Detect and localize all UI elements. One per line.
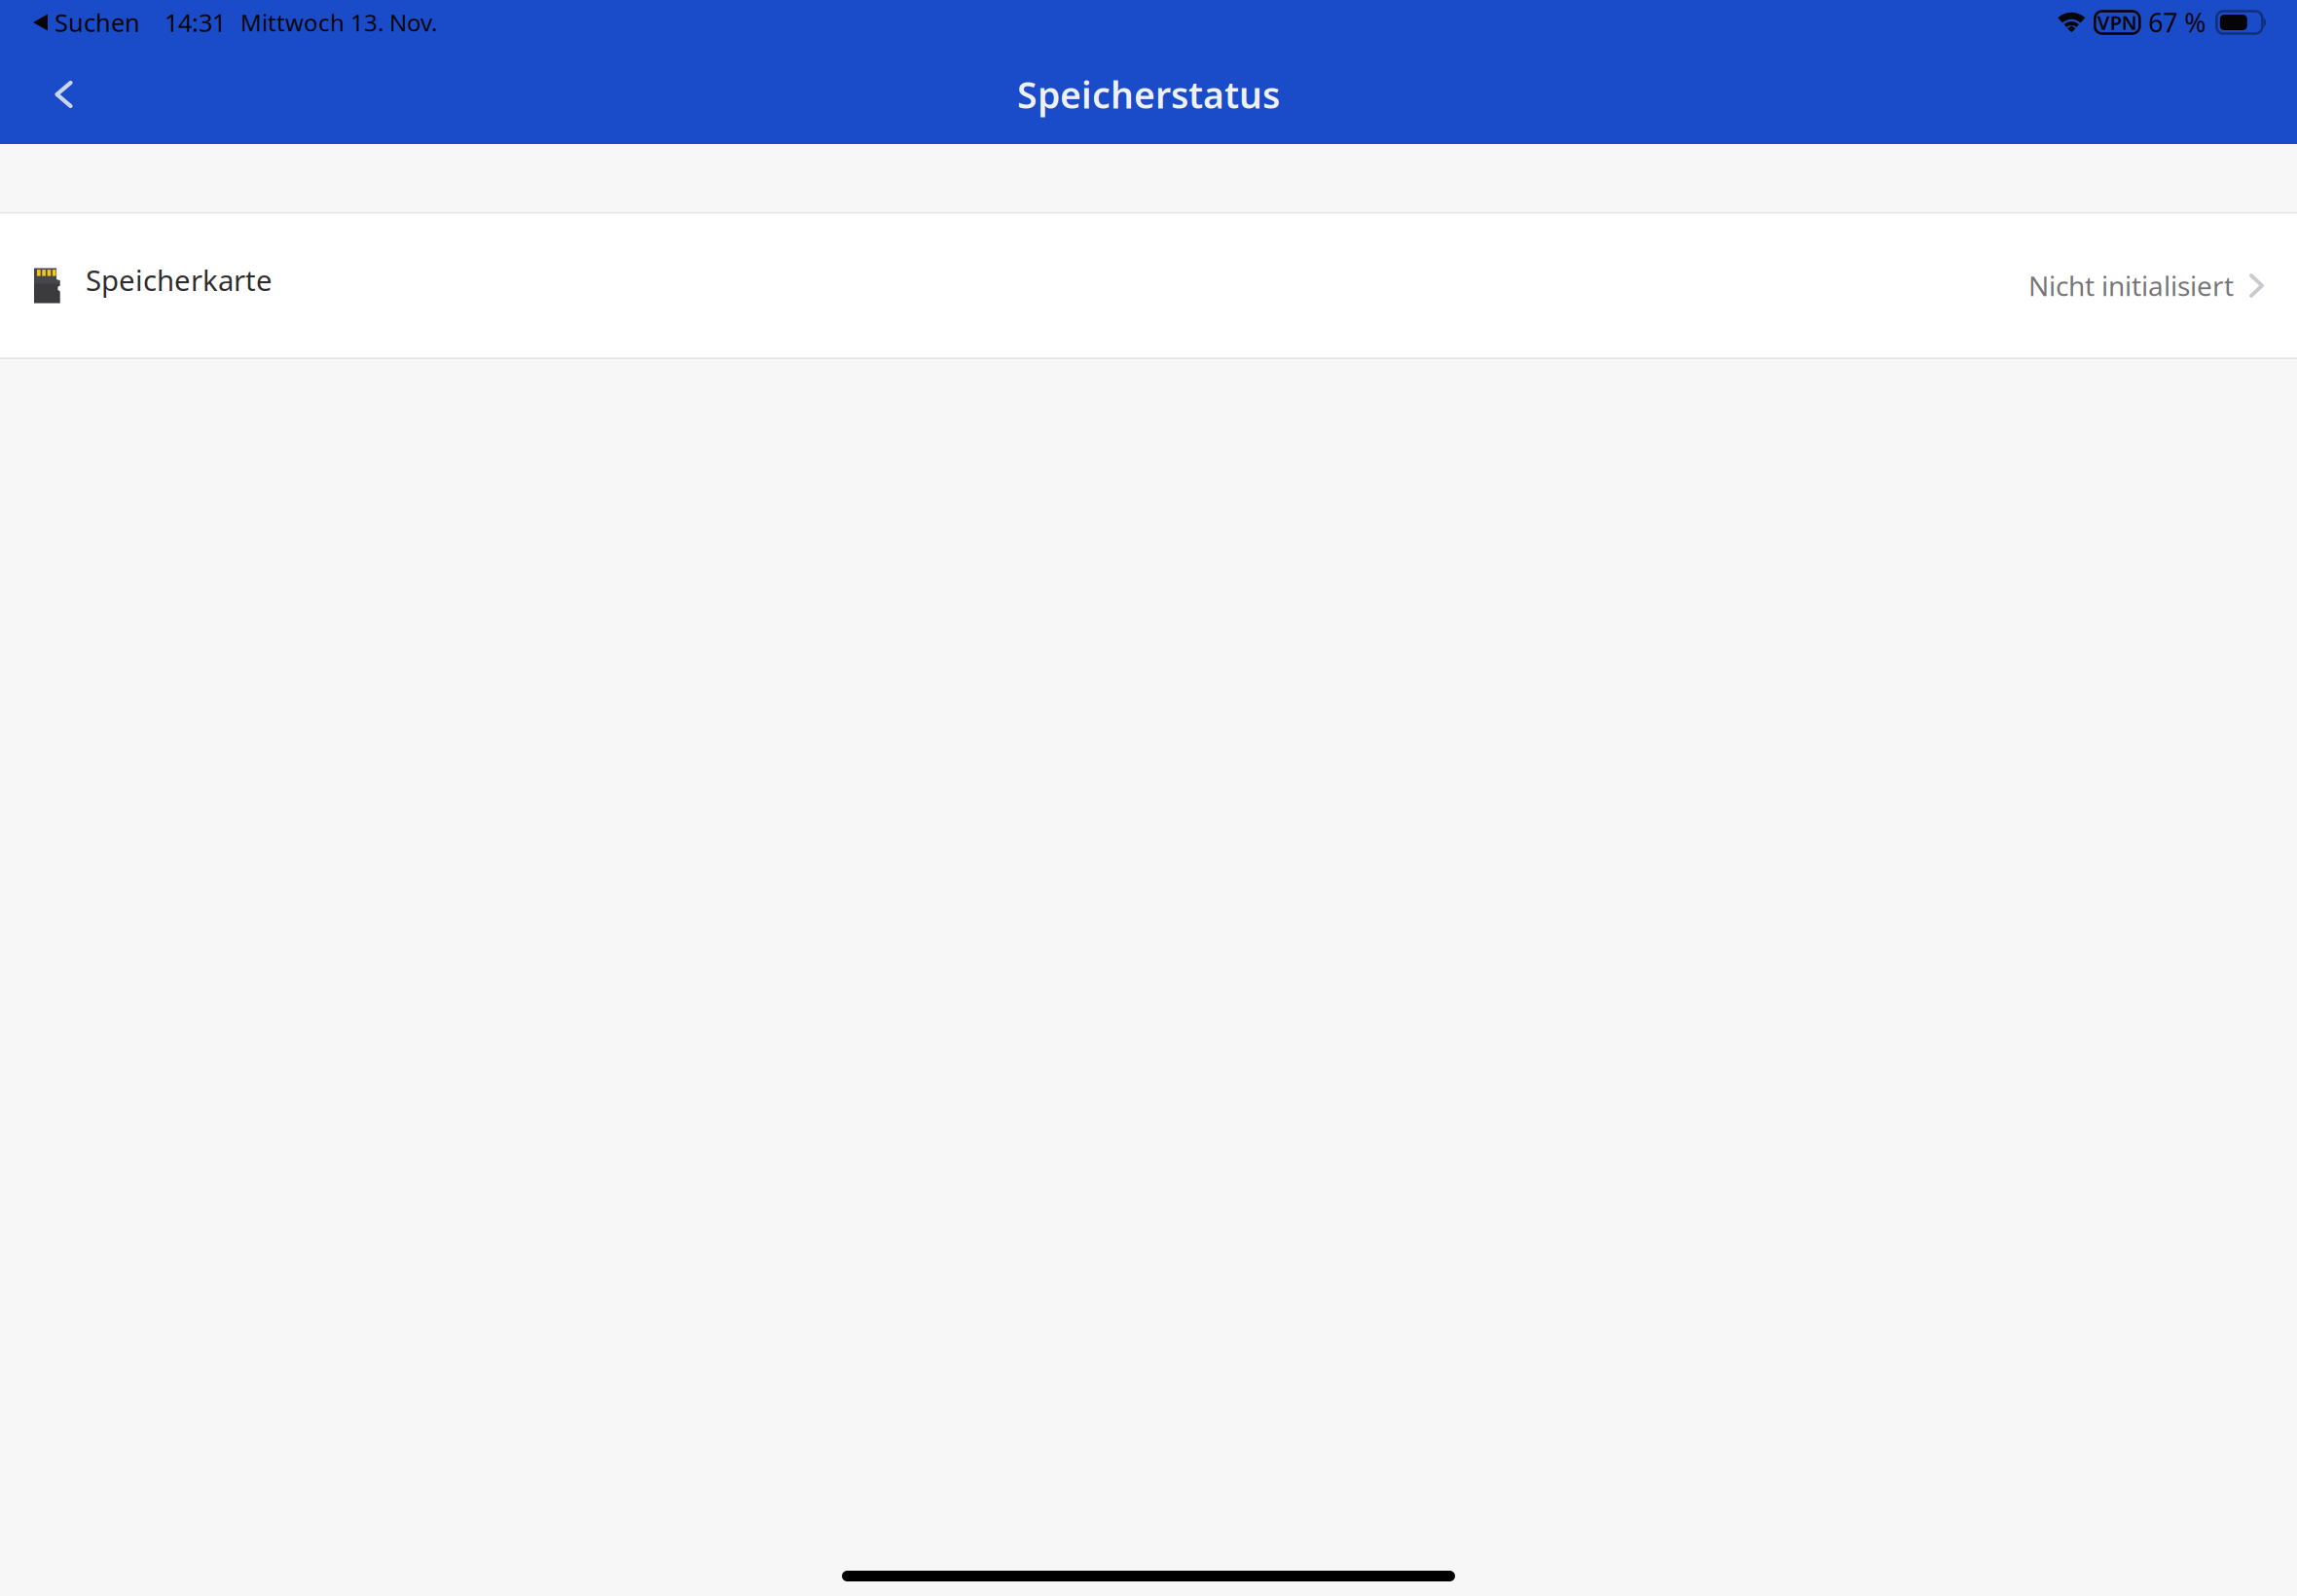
staticText: Speicherkarte <box>86 261 273 299</box>
staticText: 67 % <box>2148 5 2206 40</box>
button[interactable]: Back <box>0 57 92 131</box>
staticText: 14:31 <box>164 6 226 39</box>
button[interactable]: Speicherkarte <box>0 214 2297 358</box>
staticText: Nicht initialisiert <box>2028 268 2234 304</box>
staticText: Suchen <box>55 6 140 39</box>
staticText: Speicherstatus <box>1017 70 1280 119</box>
staticText: Mittwoch 13. Nov. <box>240 7 437 38</box>
staticText: VPN <box>2097 9 2137 35</box>
